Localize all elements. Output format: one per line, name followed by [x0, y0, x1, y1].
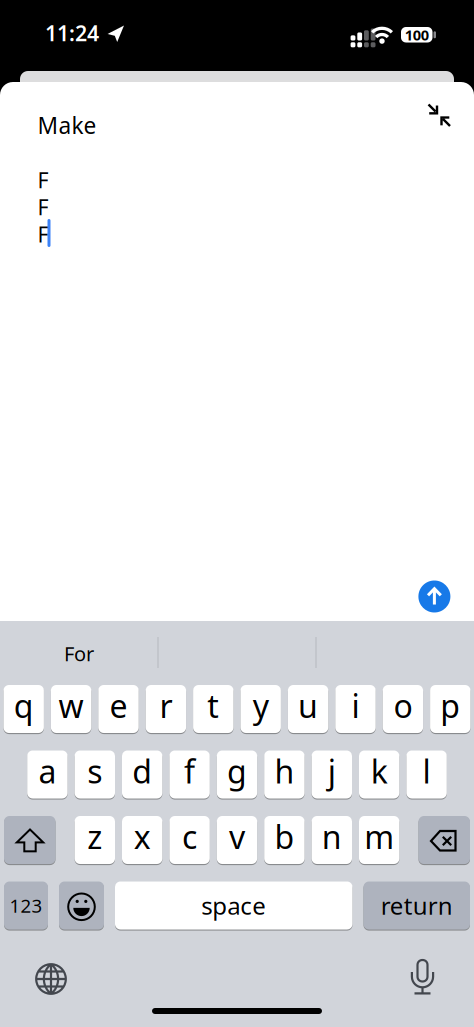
button[interactable]: space: [115, 881, 352, 929]
button[interactable]: Delete: [418, 816, 470, 864]
staticText: Make: [37, 110, 96, 140]
staticText: l: [423, 750, 431, 792]
staticText: F: [37, 166, 48, 194]
button[interactable]: Next keyboard: [33, 961, 69, 997]
button[interactable]: o: [383, 685, 423, 733]
button[interactable]: return: [363, 881, 470, 929]
staticText: return: [381, 890, 453, 921]
staticText: For: [64, 640, 94, 667]
button[interactable]: b: [264, 816, 305, 864]
staticText: 11:24: [45, 19, 99, 47]
button[interactable]: q: [3, 685, 44, 733]
button[interactable]: j: [312, 750, 352, 798]
button[interactable]: k: [359, 750, 399, 798]
button[interactable]: w: [51, 685, 91, 733]
button[interactable]: d: [122, 750, 162, 798]
staticText: 123: [9, 893, 42, 918]
button[interactable]: i: [335, 685, 376, 733]
button[interactable]: e: [98, 685, 139, 733]
staticText: k: [371, 750, 388, 792]
staticText: f: [184, 750, 195, 792]
button[interactable]: t: [193, 685, 233, 733]
staticText: a: [38, 750, 56, 792]
staticText: h: [274, 750, 294, 792]
staticText: r: [159, 684, 172, 727]
button[interactable]: 123: [4, 881, 48, 929]
button[interactable]: a: [27, 750, 68, 798]
button[interactable]: Emoji: [59, 881, 104, 929]
staticText: n: [322, 815, 342, 858]
staticText: F: [37, 220, 48, 248]
button[interactable]: y: [240, 685, 281, 733]
staticText: z: [87, 815, 102, 858]
staticText: p: [440, 684, 460, 727]
button[interactable]: For: [0, 622, 158, 684]
staticText: v: [229, 815, 245, 858]
button[interactable]: Minimize: [424, 100, 454, 131]
button[interactable]: r: [146, 685, 186, 733]
staticText: space: [201, 890, 266, 921]
staticText: j: [328, 750, 336, 792]
staticText: e: [109, 684, 127, 727]
button[interactable]: l: [406, 750, 447, 798]
button[interactable]: g: [217, 750, 257, 798]
button[interactable]: z: [75, 816, 115, 864]
button[interactable]: s: [75, 750, 115, 798]
button[interactable]: v: [217, 816, 257, 864]
staticText: g: [227, 750, 247, 792]
staticText: t: [207, 684, 219, 727]
button[interactable]: u: [288, 685, 328, 733]
button[interactable]: f: [169, 750, 210, 798]
staticText: y: [253, 684, 269, 727]
button[interactable]: c: [169, 816, 210, 864]
staticText: F: [37, 193, 48, 221]
button[interactable]: m: [359, 816, 399, 864]
staticText: b: [274, 815, 294, 858]
staticText: c: [182, 815, 197, 858]
staticText: x: [134, 815, 151, 858]
button[interactable]: Send: [418, 580, 450, 612]
button[interactable]: p: [430, 685, 470, 733]
staticText: 100: [405, 25, 429, 44]
button[interactable]: n: [312, 816, 352, 864]
button[interactable]: Shift: [4, 816, 55, 864]
staticText: d: [132, 750, 152, 792]
staticText: i: [351, 684, 359, 727]
staticText: q: [14, 684, 34, 727]
staticText: u: [298, 684, 318, 727]
button[interactable]: Dictation: [409, 957, 435, 997]
staticText: m: [364, 815, 394, 858]
button[interactable]: x: [122, 816, 162, 864]
staticText: s: [87, 750, 102, 792]
staticText: o: [393, 684, 412, 727]
staticText: w: [59, 684, 84, 727]
button[interactable]: h: [264, 750, 305, 798]
